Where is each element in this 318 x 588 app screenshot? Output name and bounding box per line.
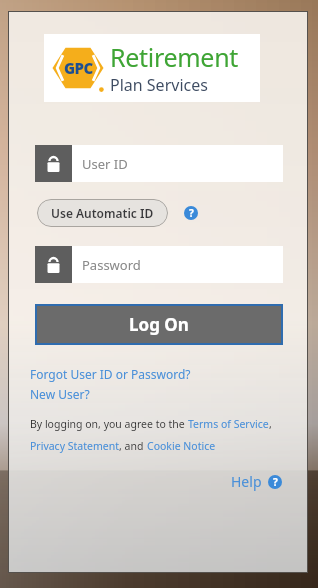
staticText: Password: [82, 256, 141, 274]
staticText: Use Automatic ID: [51, 205, 154, 221]
staticText: User ID: [82, 155, 128, 173]
staticText: Help: [231, 472, 262, 491]
staticText: Log On: [129, 313, 189, 336]
staticText: ?: [273, 475, 278, 489]
button[interactable]: Cookie Notice: [147, 439, 216, 453]
button[interactable]: Privacy Statement: [30, 439, 119, 453]
button[interactable]: New User?: [30, 386, 90, 402]
button[interactable]: Use Automatic ID: [37, 199, 168, 227]
button[interactable]: User ID: [35, 145, 283, 182]
button[interactable]: Terms of Service: [188, 417, 269, 431]
button[interactable]: Password: [35, 246, 283, 283]
staticText: , and: [119, 439, 147, 453]
button[interactable]: Help: [231, 472, 282, 491]
button[interactable]: Help about automatic ID: [184, 206, 198, 220]
staticText: ,: [269, 417, 272, 431]
staticText: Retirement: [110, 40, 239, 74]
button[interactable]: Forgot User ID or Password?: [30, 366, 191, 382]
button[interactable]: Log On: [35, 304, 283, 345]
staticText: Plan Services: [110, 74, 208, 96]
staticText: GPC: [64, 58, 93, 78]
staticText: ?: [189, 206, 194, 220]
staticText: By logging on, you agree to the: [30, 417, 188, 431]
button[interactable]: Help: [268, 475, 282, 489]
